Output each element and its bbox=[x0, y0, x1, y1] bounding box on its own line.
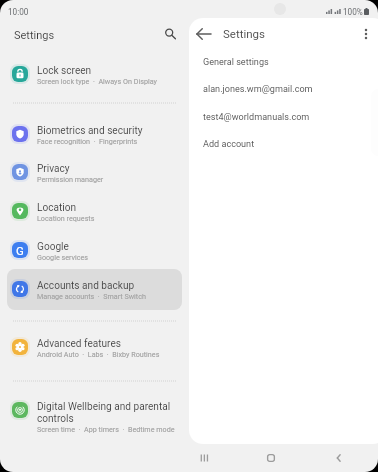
staticText: controls bbox=[37, 413, 189, 425]
staticText: Settings bbox=[14, 29, 55, 42]
staticText: G bbox=[16, 244, 24, 257]
button[interactable]: alan.jones.wm@gmail.com bbox=[189, 76, 378, 103]
button[interactable]: Add account bbox=[189, 131, 378, 158]
staticText: Permission manager bbox=[37, 175, 189, 183]
staticText: alan.jones.wm@gmail.com bbox=[203, 84, 313, 95]
button[interactable]: Recents bbox=[170, 446, 237, 470]
staticText: Google bbox=[37, 241, 189, 253]
button[interactable] bbox=[7, 152, 182, 193]
staticText: Settings bbox=[223, 27, 265, 40]
button[interactable] bbox=[7, 390, 182, 442]
staticText: Lock screen bbox=[37, 65, 189, 77]
staticText: Biometrics and security bbox=[37, 125, 189, 137]
staticText: Digital Wellbeing and parental bbox=[37, 401, 189, 413]
staticText: General settings bbox=[203, 57, 269, 68]
staticText: Google services bbox=[37, 253, 189, 261]
staticText: Screen lock type · Always On Display bbox=[37, 77, 189, 85]
button[interactable]: Back bbox=[305, 446, 373, 470]
staticText: Privacy bbox=[37, 163, 189, 175]
staticText: test4@worldmanuals.com bbox=[203, 112, 310, 123]
staticText: Add account bbox=[203, 139, 255, 150]
staticText: 10:00 bbox=[8, 7, 29, 17]
staticText: Screen time · App timers · Bedtime mode bbox=[37, 425, 189, 433]
staticText: Manage accounts · Smart Switch bbox=[37, 292, 189, 300]
staticText: Android Auto · Labs · Bixby Routines bbox=[37, 350, 189, 358]
button[interactable]: test4@worldmanuals.com bbox=[189, 104, 378, 131]
button[interactable] bbox=[7, 230, 182, 271]
staticText: Face recognition · Fingerprints bbox=[37, 137, 189, 145]
staticText: Location requests bbox=[37, 214, 189, 222]
button[interactable]: General settings bbox=[189, 49, 378, 76]
button[interactable] bbox=[7, 114, 182, 155]
button[interactable]: Search bbox=[160, 23, 182, 45]
button[interactable]: Home bbox=[237, 446, 305, 470]
button[interactable] bbox=[7, 269, 182, 310]
staticText: Location bbox=[37, 202, 189, 214]
button[interactable] bbox=[7, 54, 182, 95]
button[interactable]: Back bbox=[193, 23, 215, 45]
staticText: 100% bbox=[343, 7, 363, 17]
button[interactable]: More options bbox=[356, 24, 376, 44]
staticText: Accounts and backup bbox=[37, 280, 189, 292]
button[interactable] bbox=[7, 191, 182, 232]
staticText: Advanced features bbox=[37, 338, 189, 350]
button[interactable] bbox=[7, 327, 182, 368]
